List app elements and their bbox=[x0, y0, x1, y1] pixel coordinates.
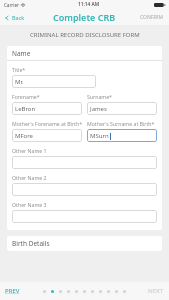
staticText: LeBron bbox=[15, 105, 36, 113]
staticText: Mr. bbox=[15, 78, 24, 86]
button[interactable]: Name bbox=[7, 46, 162, 60]
staticText: Birth Details bbox=[12, 239, 50, 248]
staticText: CRIMINAL RECORD DISCLOSURE FORM bbox=[30, 31, 140, 39]
staticText: 11:14 AM bbox=[78, 1, 100, 8]
staticText: PREV bbox=[5, 287, 20, 295]
staticText: Mother's Surname at Birth* bbox=[87, 120, 155, 127]
button[interactable] bbox=[12, 183, 157, 196]
button[interactable] bbox=[12, 156, 157, 169]
staticText: Back bbox=[12, 14, 25, 21]
staticText: MSurn bbox=[90, 132, 109, 140]
staticText: Other Name 2 bbox=[12, 174, 47, 181]
staticText: MFore bbox=[15, 132, 33, 140]
staticText: Title* bbox=[12, 66, 26, 73]
button[interactable]: PREV bbox=[0, 283, 25, 299]
staticText: CONFIRM bbox=[140, 14, 164, 21]
staticText: Forename* bbox=[12, 93, 40, 100]
staticText: Mother's Forename at Birth* bbox=[12, 120, 82, 127]
staticText: Other Name 3 bbox=[12, 201, 47, 208]
staticText: James bbox=[90, 105, 107, 113]
button[interactable]: MFore bbox=[12, 129, 82, 142]
staticText: Complete CRB bbox=[53, 11, 116, 23]
button[interactable]: Mr. bbox=[12, 75, 96, 88]
button[interactable]: MSurn bbox=[87, 129, 157, 142]
button[interactable]: Back bbox=[0, 11, 31, 24]
staticText: NEXT bbox=[148, 287, 164, 295]
staticText: Other Name 1 bbox=[12, 147, 47, 154]
button[interactable]: NEXT bbox=[143, 283, 169, 299]
staticText: Carrier bbox=[4, 2, 19, 8]
button[interactable]: CONFIRM bbox=[135, 11, 169, 24]
button[interactable] bbox=[12, 210, 157, 223]
staticText: Surname* bbox=[87, 93, 112, 100]
button[interactable]: James bbox=[87, 102, 157, 115]
staticText: Name bbox=[12, 49, 31, 58]
button[interactable]: Birth Details bbox=[7, 236, 162, 251]
button[interactable]: LeBron bbox=[12, 102, 82, 115]
